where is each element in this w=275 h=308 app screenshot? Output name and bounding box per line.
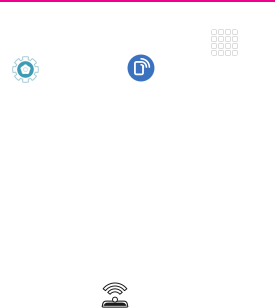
button[interactable]: Connect device <box>127 54 154 81</box>
button[interactable]: Apps <box>211 29 238 56</box>
button[interactable]: Settings <box>12 56 39 83</box>
